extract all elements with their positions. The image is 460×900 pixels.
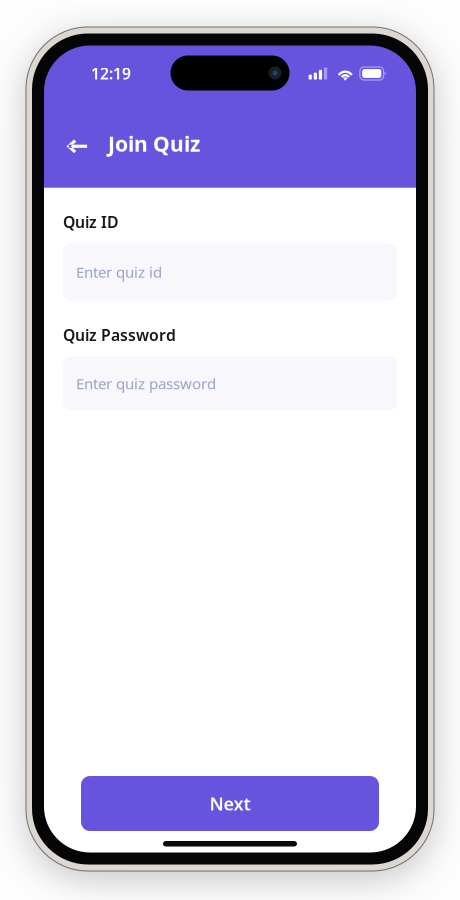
staticText: Quiz Password <box>63 324 176 346</box>
staticText: Next <box>209 791 250 816</box>
button[interactable]: Back <box>60 123 94 163</box>
staticText: Enter quiz id <box>76 262 162 282</box>
staticText: 12:19 <box>91 63 131 84</box>
staticText: Enter quiz password <box>76 373 216 394</box>
staticText: Quiz ID <box>63 211 119 233</box>
button[interactable]: Next <box>81 776 379 831</box>
staticText: Join Quiz <box>108 129 200 158</box>
